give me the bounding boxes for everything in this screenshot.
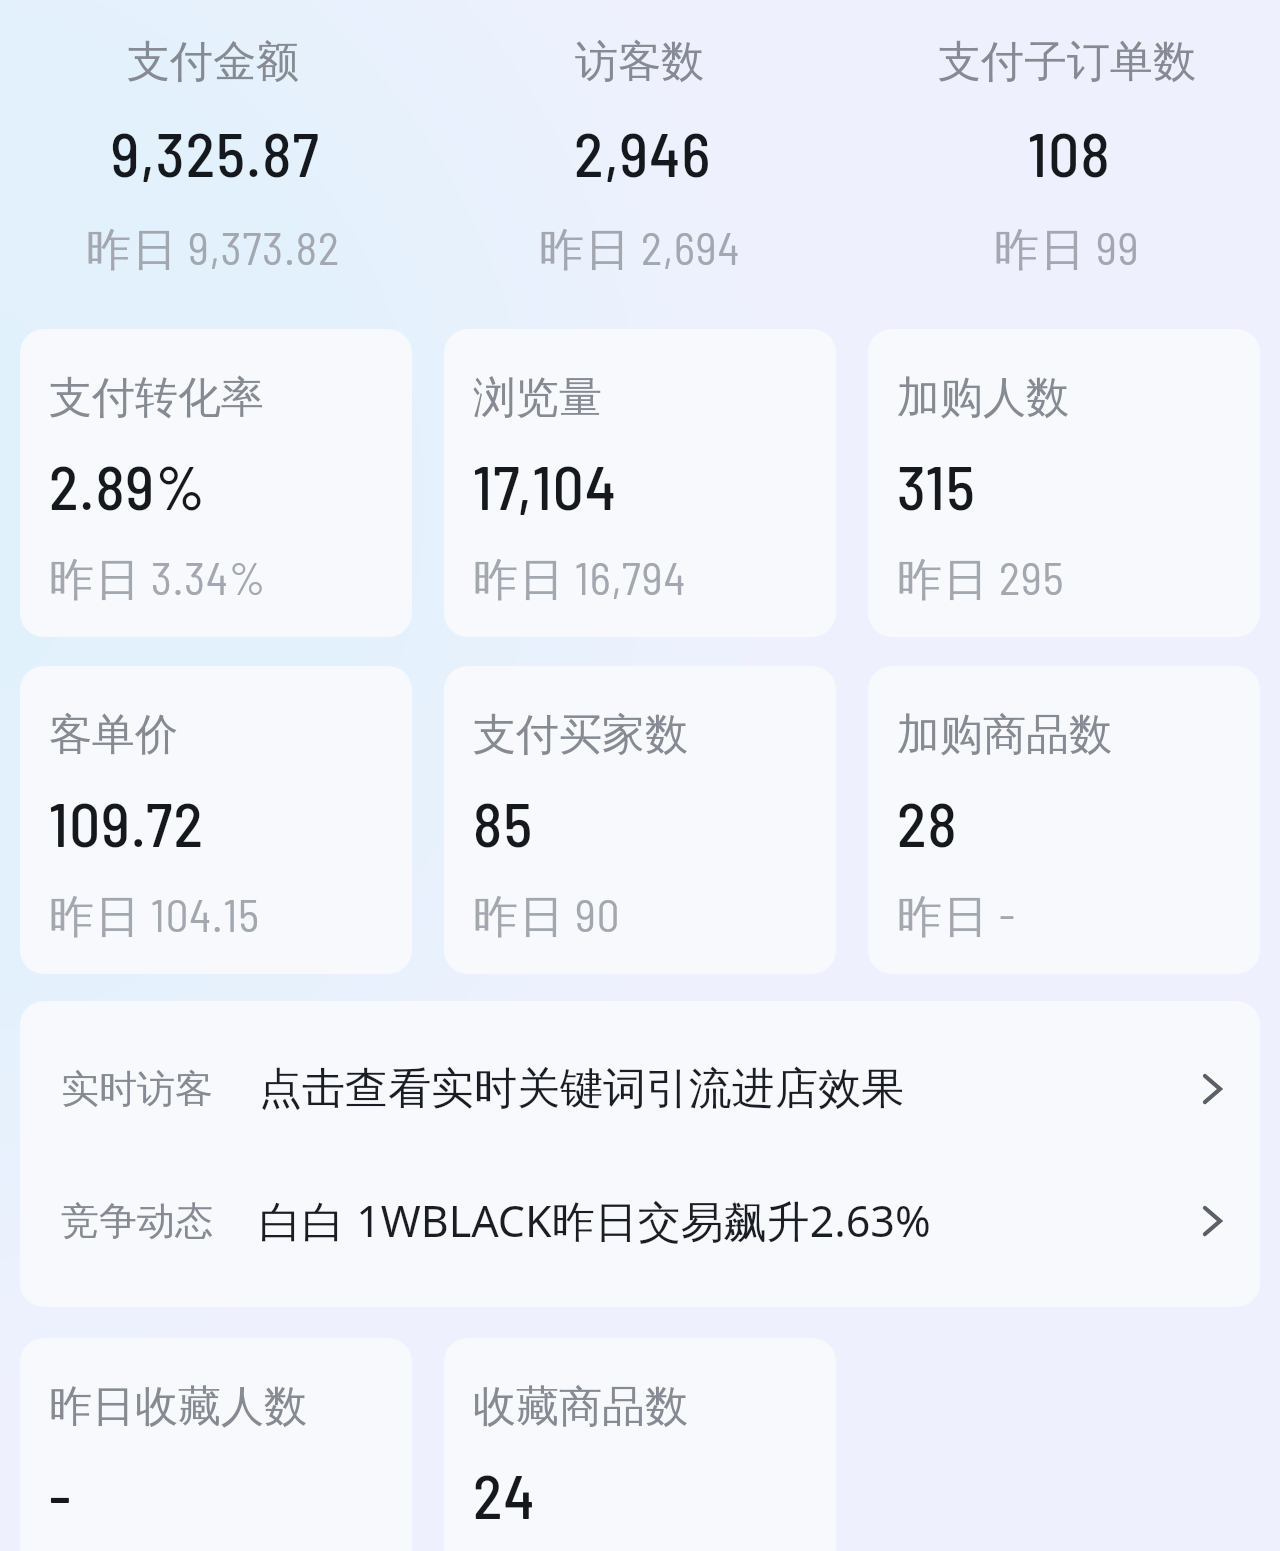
staticText: 2.89%: [49, 449, 206, 522]
staticText: 收藏商品数: [473, 1380, 688, 1434]
button[interactable]: 实时访客: [20, 1001, 1260, 1154]
staticText: 9,325.87: [111, 116, 321, 189]
staticText: 访客数: [575, 35, 704, 89]
staticText: 24: [473, 1458, 536, 1531]
staticText: 昨日 90: [473, 887, 621, 945]
staticText: 支付子订单数: [938, 35, 1196, 89]
staticText: 17,104: [473, 449, 618, 522]
staticText: 支付转化率: [49, 371, 264, 425]
staticText: 85: [473, 786, 534, 859]
staticText: 108: [1028, 116, 1111, 189]
staticText: 2,946: [574, 116, 712, 189]
button[interactable]: 支付转化率: [20, 329, 412, 637]
staticText: 加购人数: [897, 371, 1069, 425]
staticText: 浏览量: [473, 371, 602, 425]
staticText: 昨日 295: [897, 550, 1065, 608]
button[interactable]: 加购人数: [868, 329, 1260, 637]
staticText: 昨日 104.15: [49, 887, 260, 945]
button[interactable]: 竞争动态: [20, 1154, 1260, 1307]
button[interactable]: 加购商品数: [868, 666, 1260, 974]
staticText: 点击查看实时关键词引流进店效果: [259, 1062, 904, 1116]
staticText: 支付金额: [127, 35, 299, 89]
staticText: 白白 1WBLACK昨日交易飙升2.63%: [259, 1191, 931, 1250]
button[interactable]: 支付买家数: [444, 666, 836, 974]
button[interactable]: 客单价: [20, 666, 412, 974]
button[interactable]: 浏览量: [444, 329, 836, 637]
staticText: -: [49, 1458, 73, 1531]
staticText: 昨日 -: [897, 887, 1016, 945]
staticText: 昨日 2,694: [539, 220, 741, 278]
staticText: 竞争动态: [61, 1197, 213, 1245]
other: Open details: [1203, 1075, 1222, 1103]
staticText: 客单价: [49, 708, 178, 762]
staticText: 28: [897, 786, 959, 859]
staticText: 昨日 3.34%: [49, 550, 267, 608]
staticText: 109.72: [49, 786, 205, 859]
staticText: 昨日 9,373.82: [86, 220, 341, 278]
staticText: 315: [897, 449, 977, 522]
staticText: 加购商品数: [897, 708, 1112, 762]
staticText: 昨日 16,794: [473, 550, 687, 608]
staticText: 实时访客: [61, 1065, 213, 1113]
staticText: 支付买家数: [473, 708, 688, 762]
button[interactable]: 昨日收藏人数: [20, 1338, 412, 1551]
button[interactable]: 收藏商品数: [444, 1338, 836, 1551]
staticText: 昨日收藏人数: [49, 1380, 307, 1434]
staticText: 昨日 99: [994, 220, 1140, 278]
other: Open details: [1203, 1207, 1222, 1235]
